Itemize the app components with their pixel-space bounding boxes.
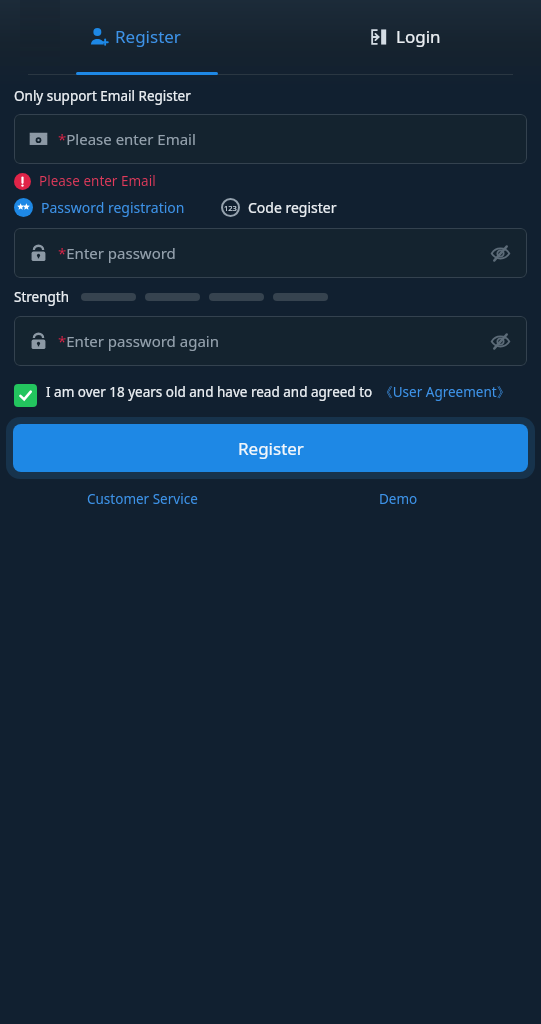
button[interactable]: I am over 18 years old and have read and…: [14, 383, 527, 406]
staticText: Register: [115, 25, 181, 48]
staticText: *Please enter Email: [58, 129, 196, 149]
staticText: Please enter Email: [39, 172, 156, 190]
button[interactable]: Login: [270, 0, 541, 72]
button[interactable]: Register: [13, 424, 528, 472]
staticText: Strength: [14, 288, 70, 306]
button[interactable]: 123: [221, 198, 337, 217]
staticText: Register: [238, 437, 304, 460]
staticText: I am over 18 years old and have read and…: [46, 383, 511, 401]
button[interactable]: Password registration: [14, 198, 185, 217]
staticText: 123: [224, 203, 237, 213]
staticText: Login: [396, 25, 441, 48]
button[interactable]: Demo: [375, 486, 422, 512]
button[interactable]: *Enter password: [14, 228, 527, 278]
button[interactable]: Show password: [487, 240, 513, 266]
staticText: *Enter password again: [58, 331, 219, 351]
staticText: *Enter password: [58, 243, 176, 263]
staticText: Customer Service: [87, 490, 198, 508]
staticText: Demo: [379, 490, 418, 508]
button[interactable]: Show password: [487, 328, 513, 354]
staticText: Only support Email Register: [14, 87, 191, 105]
button[interactable]: *Enter password again: [14, 316, 527, 366]
button[interactable]: Register: [0, 0, 270, 72]
button[interactable]: Customer Service: [83, 486, 202, 512]
staticText: Password registration: [41, 198, 185, 217]
staticText: Code register: [248, 198, 337, 217]
button[interactable]: *Please enter Email: [14, 114, 527, 164]
